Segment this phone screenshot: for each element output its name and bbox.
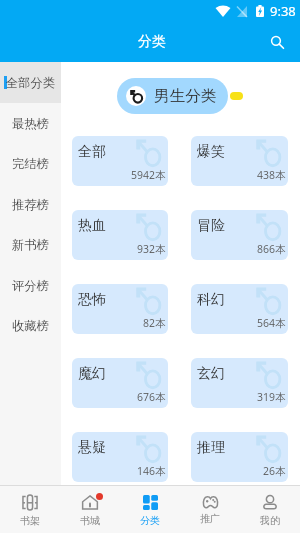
staticText: 564本 xyxy=(257,316,286,330)
staticText: 悬疑 xyxy=(78,439,106,457)
button[interactable]: 恐怖 xyxy=(72,284,168,334)
staticText: 146本 xyxy=(137,464,166,478)
button[interactable]: 评分榜 xyxy=(0,265,61,305)
button[interactable]: 爆笑 xyxy=(191,136,288,186)
button[interactable]: 全部 xyxy=(72,136,168,186)
staticText: 热血 xyxy=(78,217,106,235)
button[interactable]: 科幻 xyxy=(191,284,288,334)
staticText: 我的 xyxy=(260,514,280,527)
button[interactable]: 推荐榜 xyxy=(0,184,61,224)
staticText: 新书榜 xyxy=(12,237,49,252)
staticText: 男生分类 xyxy=(154,86,217,106)
button[interactable]: 玄幻 xyxy=(191,358,288,408)
staticText: 科幻 xyxy=(197,291,225,309)
staticText: 书城 xyxy=(80,514,100,527)
staticText: 推荐榜 xyxy=(12,197,49,212)
button[interactable]: 悬疑 xyxy=(72,432,168,482)
staticText: 82本 xyxy=(143,316,166,330)
button[interactable]: 书架 xyxy=(0,486,60,533)
staticText: 推广 xyxy=(200,512,220,525)
button[interactable]: 最热榜 xyxy=(0,103,61,143)
staticText: 推理 xyxy=(197,439,225,457)
button[interactable]: 全部分类 xyxy=(0,62,61,103)
staticText: 全部 xyxy=(78,143,106,161)
button[interactable]: 书城 xyxy=(60,486,120,533)
staticText: 玄幻 xyxy=(197,365,225,383)
staticText: 932本 xyxy=(137,242,166,256)
staticText: 最热榜 xyxy=(12,116,49,131)
staticText: 魔幻 xyxy=(78,365,106,383)
button[interactable]: 推广 xyxy=(180,486,240,533)
staticText: 676本 xyxy=(137,390,166,404)
button[interactable]: 男生分类 xyxy=(126,78,228,114)
button[interactable]: 分类 xyxy=(120,486,180,533)
staticText: 全部分类 xyxy=(6,75,56,90)
button[interactable]: Search xyxy=(262,27,292,57)
button[interactable]: 冒险 xyxy=(191,210,288,260)
staticText: 评分榜 xyxy=(12,278,49,293)
staticText: 爆笑 xyxy=(197,143,225,161)
staticText: 收藏榜 xyxy=(12,318,49,333)
button[interactable]: 推理 xyxy=(191,432,288,482)
button[interactable]: 我的 xyxy=(240,486,300,533)
staticText: 分类 xyxy=(138,33,166,51)
staticText: 冒险 xyxy=(197,217,225,235)
staticText: 438本 xyxy=(257,168,286,182)
staticText: 恐怖 xyxy=(78,291,106,309)
staticText: 9:38 xyxy=(270,2,296,20)
staticText: 5942本 xyxy=(131,168,166,182)
staticText: 26本 xyxy=(263,464,286,478)
button[interactable]: 新书榜 xyxy=(0,224,61,265)
button[interactable]: 魔幻 xyxy=(72,358,168,408)
staticText: 866本 xyxy=(257,242,286,256)
button[interactable]: 完结榜 xyxy=(0,143,61,184)
button[interactable]: 热血 xyxy=(72,210,168,260)
staticText: 319本 xyxy=(257,390,286,404)
staticText: 完结榜 xyxy=(12,156,49,171)
staticText: 书架 xyxy=(20,514,40,527)
button[interactable]: 收藏榜 xyxy=(0,305,61,346)
staticText: 分类 xyxy=(140,514,160,527)
